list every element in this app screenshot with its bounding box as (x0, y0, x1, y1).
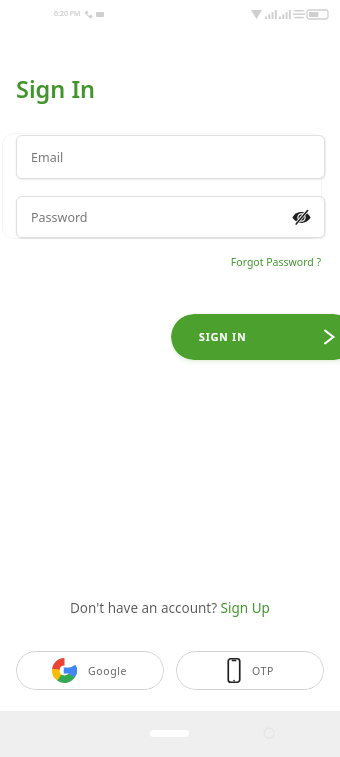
button[interactable]: Email (16, 135, 325, 179)
button[interactable]: OTP (176, 651, 324, 690)
staticText: SIGN IN (199, 330, 247, 344)
staticText: Email (31, 149, 64, 166)
button[interactable]: Recents (264, 728, 274, 738)
staticText: Google (88, 664, 128, 678)
button[interactable]: SIGN IN (171, 314, 340, 360)
staticText: Don't have an account? Sign Up (70, 599, 270, 617)
staticText: Sign In (16, 73, 96, 105)
button[interactable]: Forgot Password ? (0, 255, 321, 269)
button[interactable]: Password (16, 196, 325, 238)
staticText: Password (31, 209, 88, 226)
button[interactable]: Show password (292, 210, 311, 225)
button[interactable]: Google (16, 651, 164, 690)
staticText: 6:20 PM (54, 9, 81, 19)
staticText: OTP (252, 664, 274, 678)
